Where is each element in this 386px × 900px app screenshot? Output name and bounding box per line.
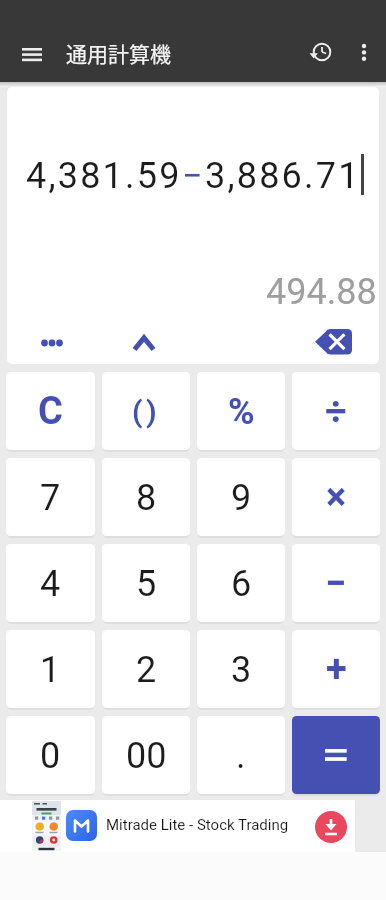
- button[interactable]: 2: [102, 630, 190, 709]
- button[interactable]: 0: [6, 716, 95, 795]
- button[interactable]: 00: [102, 716, 190, 795]
- staticText: C: [38, 389, 63, 434]
- button[interactable]: 3: [197, 630, 285, 709]
- button[interactable]: (): [102, 372, 190, 451]
- button[interactable]: 7: [6, 458, 95, 537]
- button[interactable]: [306, 36, 338, 68]
- button[interactable]: [315, 811, 347, 843]
- button[interactable]: −: [292, 544, 380, 623]
- staticText: .: [236, 735, 246, 777]
- staticText: (): [132, 394, 161, 429]
- staticText: −: [182, 155, 205, 197]
- button[interactable]: 5: [102, 544, 190, 623]
- button[interactable]: C: [6, 372, 95, 451]
- staticText: 1: [40, 649, 61, 691]
- staticText: 5: [136, 563, 157, 605]
- button[interactable]: 4: [6, 544, 95, 623]
- staticText: 6: [231, 563, 252, 605]
- staticText: 4,381.59: [26, 155, 182, 197]
- button[interactable]: ÷: [292, 372, 380, 451]
- button[interactable]: [31, 323, 73, 363]
- button[interactable]: +: [292, 630, 380, 709]
- staticText: 4: [40, 563, 61, 605]
- button[interactable]: [124, 323, 164, 363]
- button[interactable]: %: [197, 372, 285, 451]
- button[interactable]: [12, 38, 50, 70]
- staticText: 2: [136, 649, 157, 691]
- staticText: 3,886.71: [205, 155, 361, 197]
- staticText: ÷: [325, 389, 347, 434]
- staticText: %: [228, 391, 255, 433]
- button[interactable]: .: [197, 716, 285, 795]
- button[interactable]: 8: [102, 458, 190, 537]
- staticText: 494.88: [266, 271, 377, 313]
- button[interactable]: [292, 716, 380, 795]
- staticText: ×: [326, 475, 347, 520]
- staticText: 9: [231, 477, 252, 519]
- staticText: 7: [40, 477, 61, 519]
- button[interactable]: Mitrade Lite - Stock Trading: [0, 800, 355, 852]
- button[interactable]: 1: [6, 630, 95, 709]
- staticText: +: [326, 647, 347, 692]
- staticText: 通用計算機: [66, 38, 171, 68]
- staticText: −: [325, 561, 347, 606]
- button[interactable]: 9: [197, 458, 285, 537]
- button[interactable]: [307, 321, 360, 363]
- staticText: 3: [231, 649, 252, 691]
- staticText: 00: [126, 735, 167, 777]
- staticText: 0: [40, 735, 61, 777]
- button[interactable]: ×: [292, 458, 380, 537]
- button[interactable]: 6: [197, 544, 285, 623]
- staticText: Mitrade Lite - Stock Trading: [106, 816, 289, 834]
- button[interactable]: [350, 36, 378, 68]
- staticText: 8: [136, 477, 157, 519]
